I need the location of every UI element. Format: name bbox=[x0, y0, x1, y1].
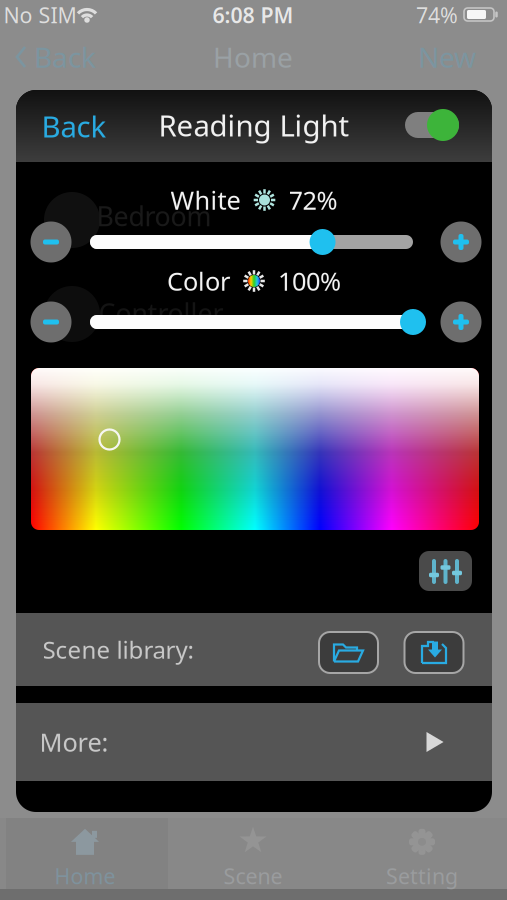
staticText: Home bbox=[54, 862, 115, 890]
staticText: No SIM bbox=[3, 1, 76, 29]
button[interactable]: Scene bbox=[223, 828, 282, 890]
staticText: Color bbox=[167, 264, 230, 298]
button[interactable]: Custom adjust bbox=[419, 551, 472, 591]
button[interactable]: Power bbox=[405, 108, 463, 142]
staticText: New bbox=[418, 38, 476, 76]
button[interactable]: Back bbox=[41, 106, 106, 145]
staticText: More: bbox=[39, 725, 108, 759]
button[interactable]: New bbox=[418, 38, 476, 76]
staticText: Reading Light bbox=[158, 105, 349, 144]
staticText: Scene library: bbox=[42, 634, 193, 665]
staticText: 74% bbox=[416, 1, 458, 29]
staticText: Controller bbox=[98, 295, 223, 331]
button[interactable]: Home bbox=[54, 828, 115, 890]
button[interactable]: White brightness bbox=[80, 221, 423, 262]
button[interactable]: Increase bbox=[440, 301, 481, 342]
button[interactable]: Color brightness bbox=[80, 301, 423, 342]
button[interactable]: Open scene bbox=[319, 632, 378, 673]
button[interactable]: More: bbox=[16, 703, 492, 781]
button[interactable]: Color picker bbox=[31, 368, 479, 530]
button[interactable]: Decrease bbox=[30, 301, 71, 342]
button[interactable]: Decrease bbox=[30, 221, 71, 262]
staticText: Back bbox=[34, 38, 96, 76]
staticText: Home bbox=[213, 38, 293, 76]
staticText: 72% bbox=[288, 183, 337, 217]
button[interactable]: Back bbox=[16, 38, 96, 76]
staticText: Back bbox=[41, 106, 106, 145]
button[interactable]: Increase bbox=[440, 221, 481, 262]
staticText: Scene bbox=[223, 862, 282, 890]
staticText: Setting bbox=[386, 862, 458, 890]
staticText: White bbox=[170, 183, 240, 217]
staticText: 100% bbox=[278, 264, 341, 298]
button[interactable]: Setting bbox=[386, 828, 458, 890]
staticText: 6:08 PM bbox=[212, 1, 293, 29]
button[interactable]: Save scene bbox=[404, 632, 463, 673]
staticText: Bedroom bbox=[96, 198, 211, 234]
